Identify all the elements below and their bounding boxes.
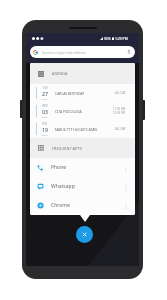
- button[interactable]: More options: [123, 182, 129, 192]
- staticText: CARLAS BIRTHDAY: [55, 91, 85, 96]
- button[interactable]: More options: [123, 163, 129, 173]
- staticText: 12:30 PM: [113, 111, 126, 115]
- button[interactable]: Close: [76, 226, 93, 243]
- staticText: Whatsapp: [51, 183, 75, 190]
- staticText: MAR & TTT HUGGE'S ATAN: [55, 127, 97, 132]
- staticText: Chrome: [51, 202, 70, 209]
- staticText: 27: [42, 90, 48, 97]
- staticText: 19: [42, 126, 48, 133]
- button[interactable]: AGENDA: [30, 63, 135, 84]
- staticText: 2019: [42, 115, 48, 118]
- staticText: ALL DAY: [115, 91, 126, 95]
- staticText: 2019: [42, 97, 48, 100]
- button[interactable]: Chrome: [30, 196, 135, 215]
- staticText: AGENDA: [52, 71, 68, 76]
- staticText: Search or type web address: [42, 50, 86, 55]
- staticText: THU: [42, 122, 48, 126]
- button[interactable]: Whatsapp: [30, 177, 135, 196]
- staticText: 1:29 PM: [115, 36, 128, 41]
- staticText: CITA PSICOLOGA: [55, 109, 82, 114]
- staticText: Phone: [51, 164, 67, 171]
- staticText: ALL DAY: [115, 127, 126, 131]
- staticText: TUE: [43, 86, 48, 90]
- staticText: 2019: [42, 133, 48, 136]
- button[interactable]: Search or type web address: [30, 46, 135, 58]
- button[interactable]: TUE: [30, 84, 135, 102]
- button[interactable]: More options: [123, 201, 129, 211]
- staticText: 11:30 AM: [113, 107, 126, 111]
- staticText: WED: [42, 104, 48, 108]
- button[interactable]: WED: [30, 102, 135, 120]
- button[interactable]: THU: [30, 120, 135, 138]
- button[interactable]: Phone: [30, 158, 135, 177]
- button[interactable]: FREQUENT APPS: [30, 138, 135, 158]
- staticText: 03: [42, 108, 48, 115]
- staticText: 95%: [104, 36, 111, 41]
- staticText: FREQUENT APPS: [52, 146, 82, 151]
